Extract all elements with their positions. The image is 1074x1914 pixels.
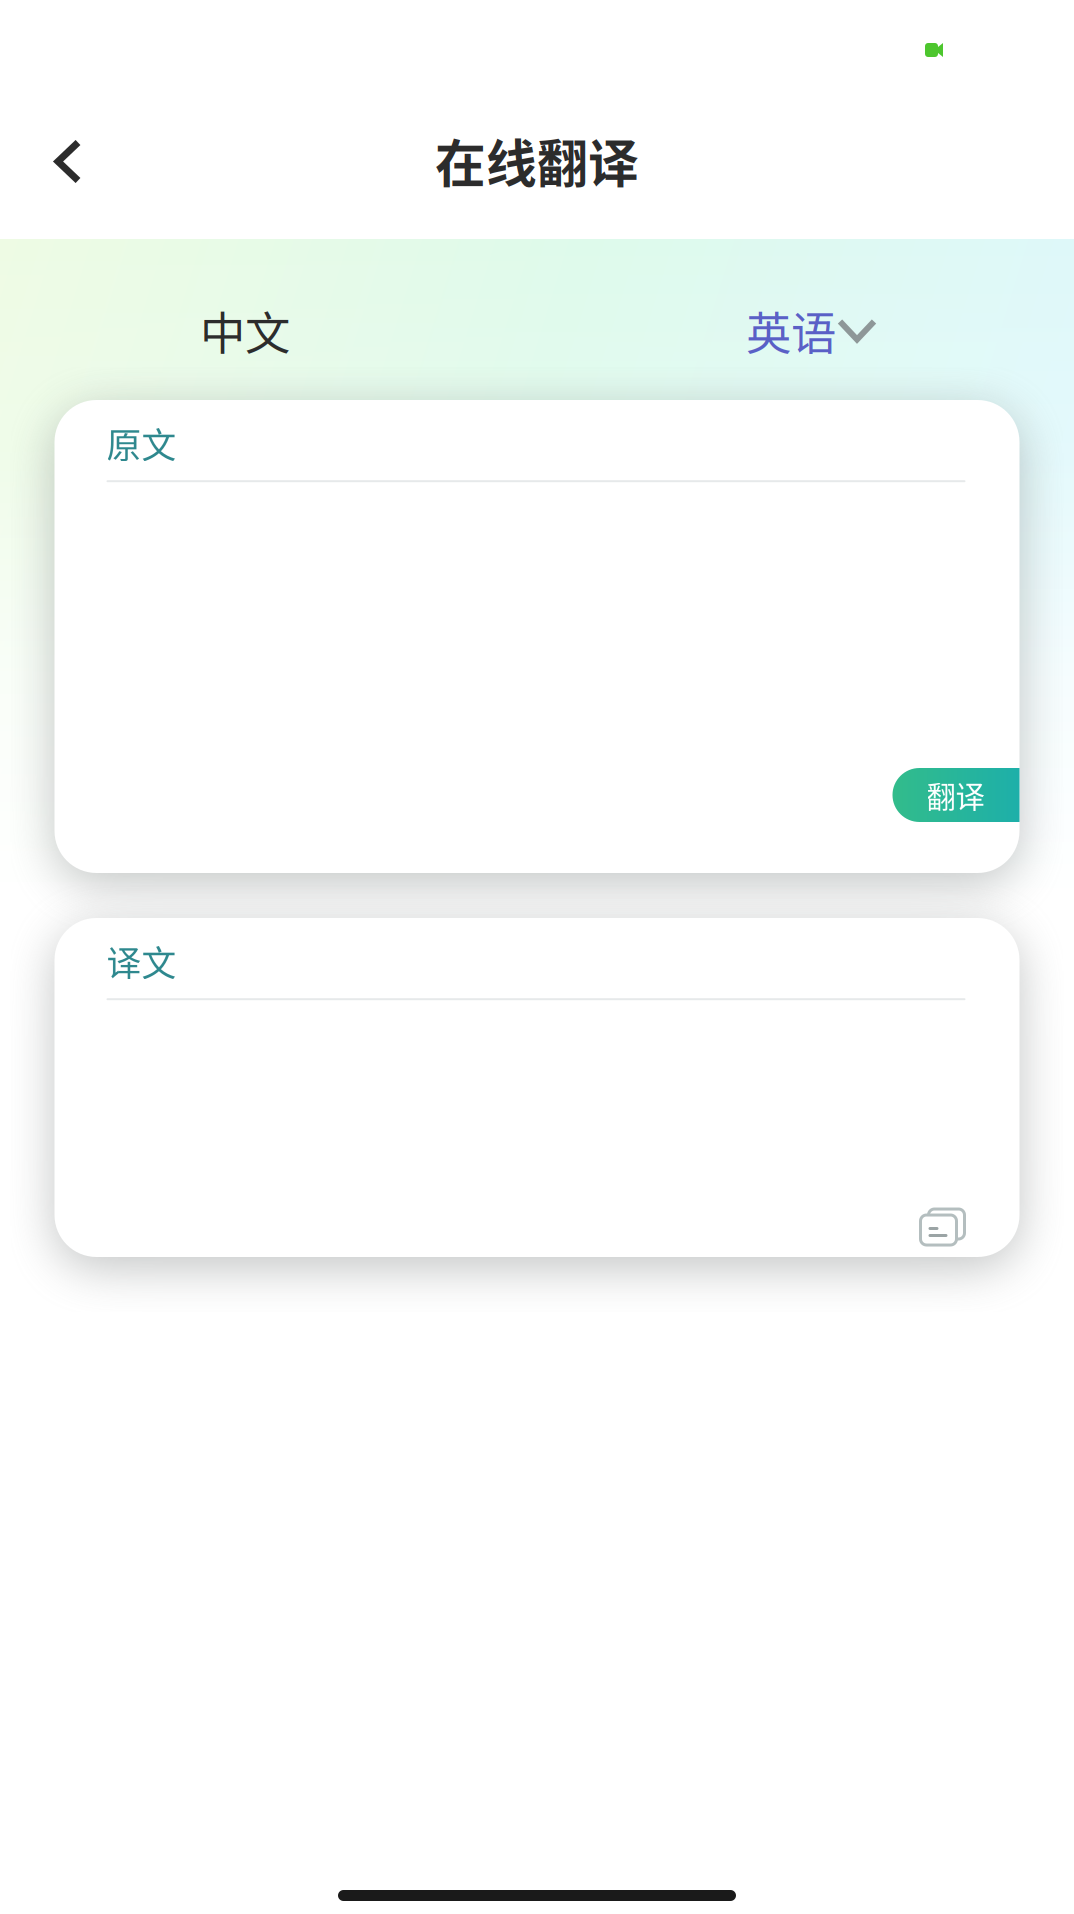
staticText: 翻译 xyxy=(926,774,984,816)
staticText: 原文 xyxy=(106,418,176,468)
button[interactable]: Back xyxy=(0,123,117,215)
button[interactable]: 中文 xyxy=(182,284,308,377)
button[interactable]: 英语 xyxy=(746,284,878,377)
staticText: 英语 xyxy=(746,298,836,363)
staticText: 译文 xyxy=(106,936,176,986)
button[interactable]: Copy xyxy=(920,1209,1019,1257)
button[interactable]: 翻译 xyxy=(892,768,1074,822)
staticText: 中文 xyxy=(200,298,290,363)
staticText: 在线翻译 xyxy=(435,124,639,197)
